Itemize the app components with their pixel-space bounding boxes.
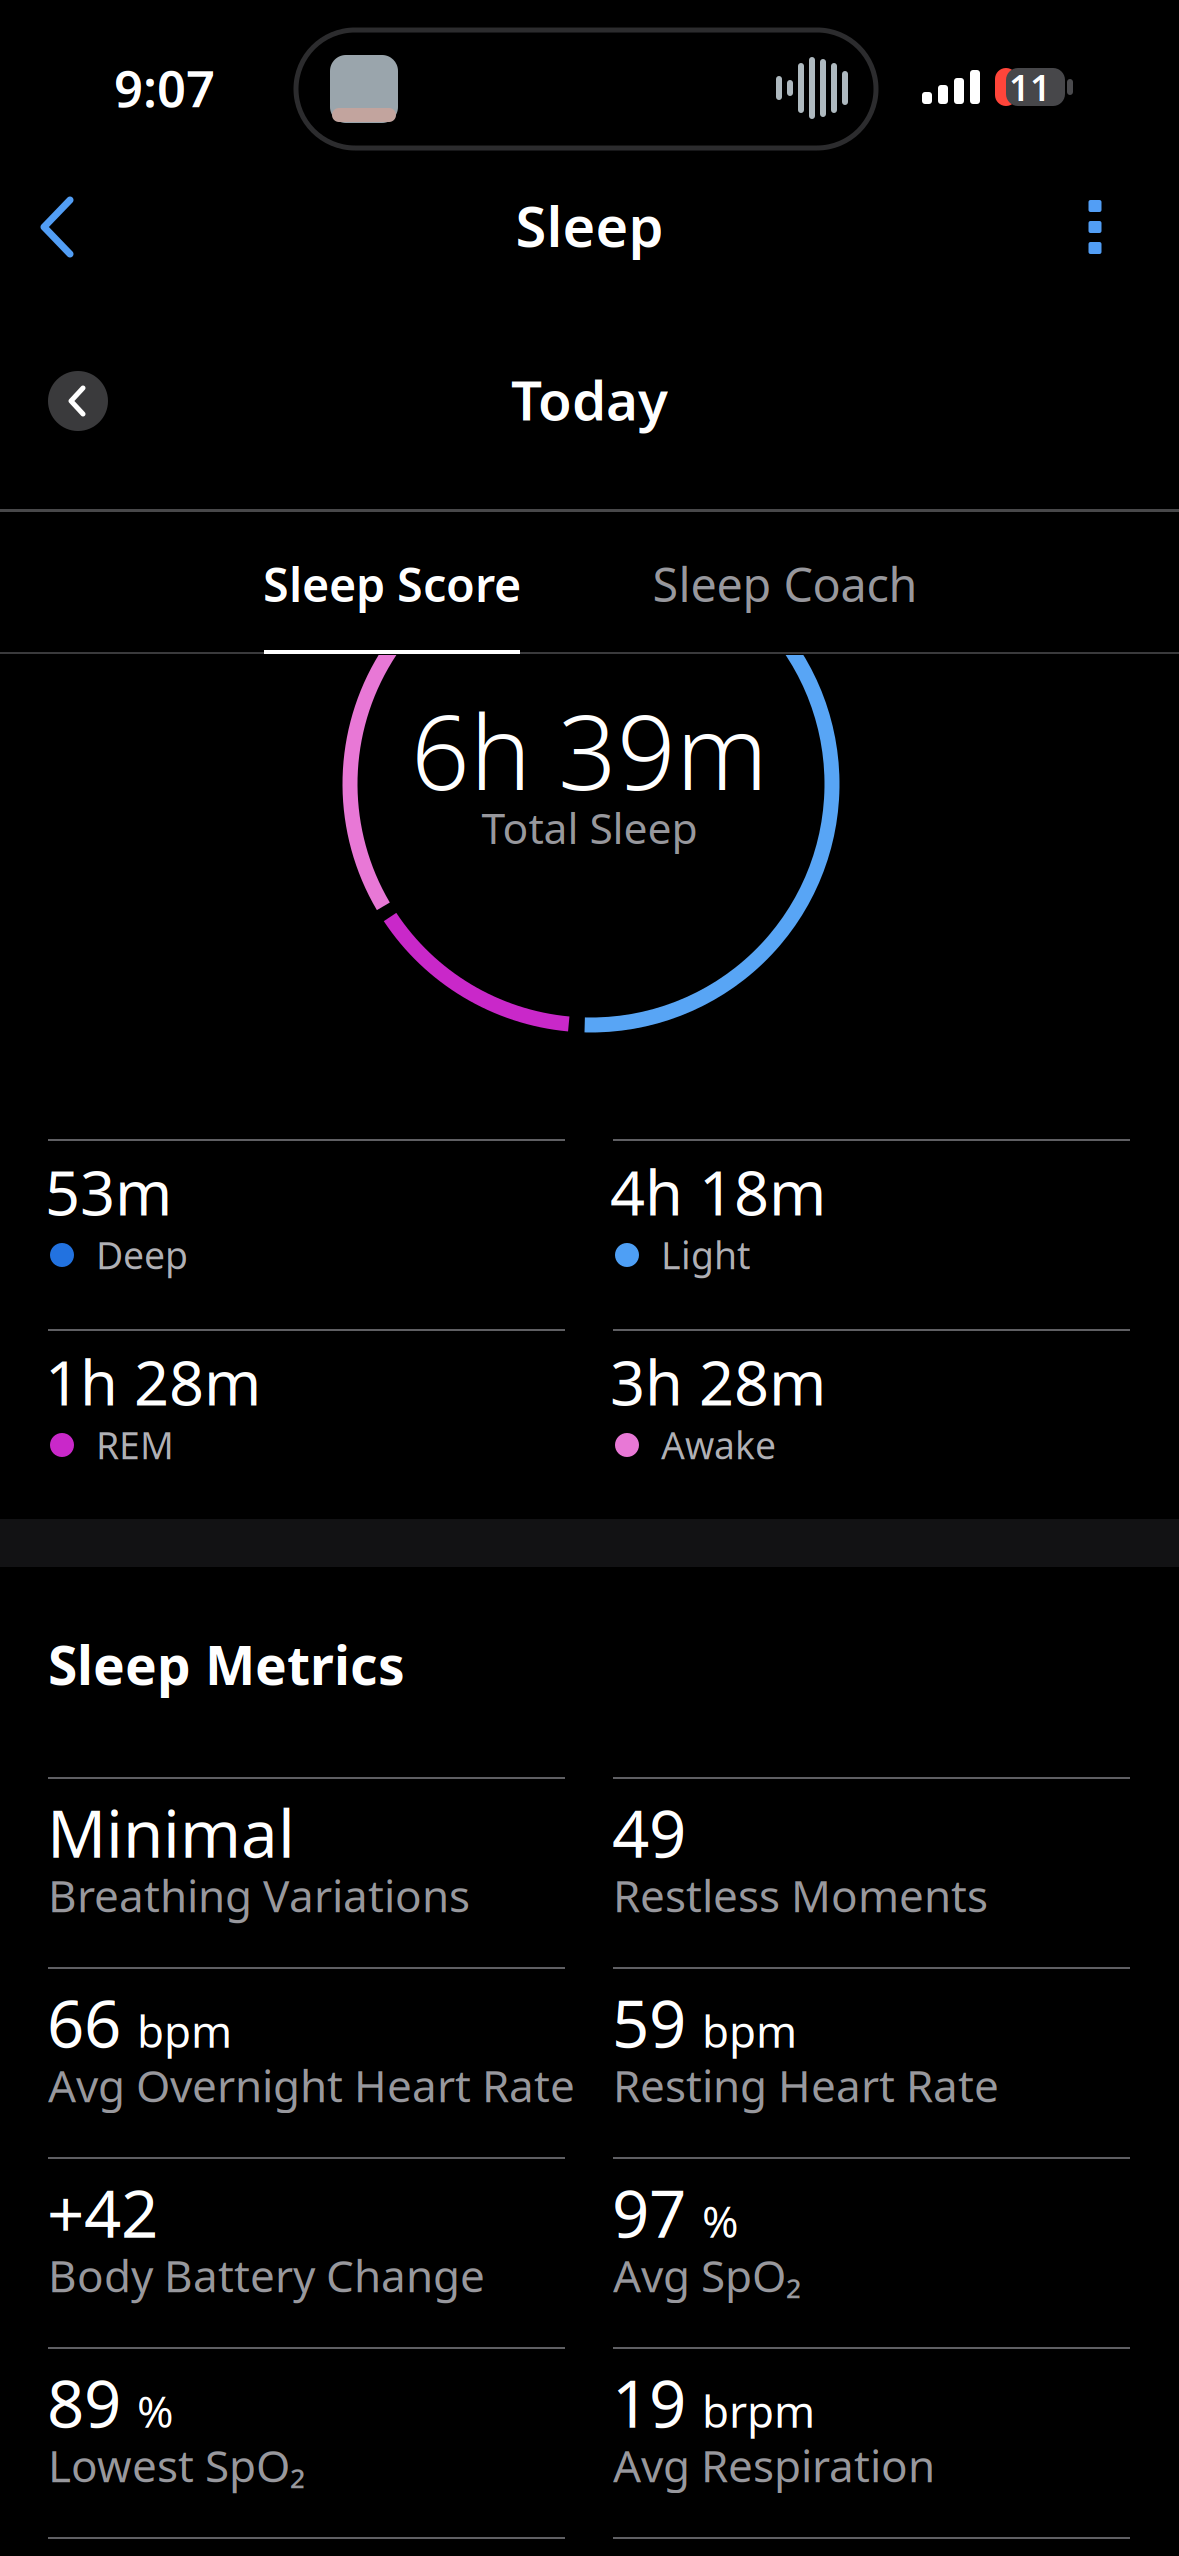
staticText: 1h 28m	[45, 1341, 261, 1422]
staticText: REM	[96, 1420, 174, 1470]
staticText: Avg Overnight Heart Rate	[48, 2056, 575, 2114]
staticText: 49	[612, 1789, 686, 1876]
staticText: Sleep Metrics	[48, 1629, 405, 1700]
staticText: 97	[612, 2169, 686, 2256]
button[interactable]	[48, 371, 108, 431]
staticText: 11	[1009, 63, 1051, 111]
staticText: 3h 28m	[610, 1341, 826, 1422]
staticText: brpm	[702, 2381, 815, 2440]
staticText: 66	[47, 1979, 121, 2066]
staticText: 59	[612, 1979, 686, 2066]
staticText: +42	[47, 2169, 158, 2256]
button[interactable]	[1070, 196, 1120, 258]
staticText: Sleep Score	[263, 553, 521, 615]
staticText: Sleep	[515, 188, 663, 262]
staticText: Today	[511, 363, 668, 436]
staticText: Lowest SpO₂	[48, 2436, 305, 2494]
staticText: %	[137, 2381, 174, 2440]
staticText: 53m	[45, 1151, 172, 1232]
staticText: Breathing Variations	[48, 1866, 470, 1924]
staticText: 19	[612, 2359, 686, 2446]
button[interactable]	[38, 195, 78, 259]
staticText: 6h 39m	[411, 682, 768, 818]
staticText: bpm	[137, 2001, 232, 2060]
staticText: Awake	[661, 1420, 776, 1470]
staticText: Avg Respiration	[613, 2436, 935, 2494]
staticText: 9:07	[114, 54, 215, 121]
button[interactable]: Sleep Score	[172, 546, 612, 622]
staticText: 89	[47, 2359, 121, 2446]
staticText: Light	[661, 1230, 750, 1280]
staticText: Deep	[96, 1230, 188, 1280]
staticText: Sleep Coach	[652, 553, 917, 615]
button[interactable]: Sleep Coach	[565, 546, 1005, 622]
staticText: Body Battery Change	[48, 2246, 485, 2304]
staticText: %	[702, 2191, 739, 2250]
staticText: Resting Heart Rate	[613, 2056, 999, 2114]
staticText: 4h 18m	[610, 1151, 826, 1232]
staticText: Minimal	[47, 1789, 295, 1876]
staticText: Restless Moments	[613, 1866, 988, 1924]
staticText: Avg SpO₂	[613, 2246, 801, 2304]
staticText: bpm	[702, 2001, 797, 2060]
staticText: Total Sleep	[481, 799, 697, 856]
